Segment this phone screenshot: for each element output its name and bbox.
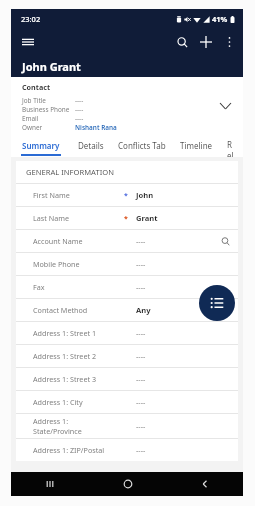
- staticText: Mobile Phone: [33, 259, 80, 269]
- staticText: ----: [136, 328, 146, 338]
- button[interactable]: Conflicts Tab: [111, 135, 173, 157]
- staticText: Last Name: [33, 213, 69, 223]
- button[interactable]: Summary: [11, 135, 71, 157]
- staticText: ----: [75, 114, 84, 123]
- button[interactable]: Command bar: [199, 285, 235, 321]
- other: Lookup: [218, 234, 232, 248]
- staticText: *: [124, 191, 128, 201]
- button[interactable]: Search: [170, 30, 194, 54]
- staticText: ----: [75, 96, 84, 105]
- staticText: State/Province: [33, 426, 82, 436]
- staticText: Conflicts Tab: [118, 140, 166, 151]
- staticText: Address 1: Street 2: [33, 351, 97, 361]
- staticText: Contact: [22, 82, 51, 92]
- staticText: Address 1: Street 3: [33, 374, 97, 384]
- staticText: John Grant: [22, 59, 81, 74]
- staticText: ----: [136, 374, 146, 384]
- staticText: 41%: [212, 14, 228, 24]
- staticText: Nishant Rana: [75, 123, 117, 132]
- staticText: First Name: [33, 190, 70, 200]
- staticText: Email: [22, 114, 39, 123]
- staticText: Owner: [22, 123, 43, 132]
- staticText: Job Title: [22, 96, 46, 105]
- staticText: Any: [136, 305, 151, 315]
- button[interactable]: Details: [71, 135, 111, 157]
- staticText: *: [124, 214, 128, 224]
- staticText: ----: [136, 259, 146, 269]
- button[interactable]: Address 1: ZIP/Postal: [16, 439, 238, 461]
- button[interactable]: More options: [218, 31, 240, 53]
- staticText: Address 1:: [33, 416, 69, 426]
- staticText: Account Name: [33, 236, 83, 246]
- staticText: ----: [136, 351, 146, 361]
- staticText: Address 1: Street 1: [33, 328, 97, 338]
- button[interactable]: Address 1: Street 1: [16, 322, 238, 344]
- button[interactable]: Back: [166, 472, 243, 496]
- staticText: Summary: [22, 140, 60, 151]
- staticText: Address 1: ZIP/Postal: [33, 445, 105, 455]
- button[interactable]: Add: [194, 30, 218, 54]
- staticText: ----: [136, 282, 146, 292]
- staticText: Rel: [227, 139, 236, 157]
- button[interactable]: Account Name: [16, 230, 238, 252]
- staticText: Grant: [136, 213, 158, 223]
- button[interactable]: Contact: [11, 77, 243, 135]
- button[interactable]: Expand: [215, 96, 235, 116]
- button[interactable]: Recents: [11, 472, 89, 496]
- staticText: ----: [136, 421, 146, 431]
- staticText: John: [136, 190, 154, 200]
- button[interactable]: Address 1:: [16, 414, 238, 438]
- button[interactable]: Mobile Phone: [16, 253, 238, 275]
- staticText: ----: [75, 105, 84, 114]
- button[interactable]: Address 1: City: [16, 391, 238, 413]
- button[interactable]: Fax: [16, 276, 238, 298]
- staticText: Timeline: [180, 140, 213, 151]
- staticText: Business Phone: [22, 105, 70, 114]
- button[interactable]: Last Name: [16, 207, 238, 229]
- staticText: Address 1: City: [33, 397, 83, 407]
- staticText: Details: [78, 140, 104, 151]
- button[interactable]: Address 1: Street 2: [16, 345, 238, 367]
- staticText: Fax: [33, 282, 45, 292]
- staticText: ----: [136, 397, 146, 407]
- button[interactable]: Menu: [15, 29, 41, 55]
- button[interactable]: Home: [89, 472, 166, 496]
- button[interactable]: First Name: [16, 184, 238, 206]
- button[interactable]: Timeline: [173, 135, 220, 157]
- staticText: ----: [136, 445, 146, 455]
- button[interactable]: Address 1: Street 3: [16, 368, 238, 390]
- staticText: 23:02: [21, 14, 41, 24]
- button[interactable]: Rel: [220, 135, 243, 157]
- button[interactable]: Contact Method: [16, 299, 238, 321]
- staticText: GENERAL INFORMATION: [26, 167, 114, 177]
- staticText: Contact Method: [33, 305, 88, 315]
- staticText: ----: [136, 236, 146, 246]
